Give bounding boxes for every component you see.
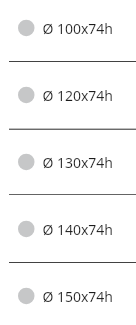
button[interactable]: Ø 130x74h <box>0 129 136 196</box>
staticText: Ø 150x74h <box>43 287 114 306</box>
button[interactable]: Ø 100x74h <box>0 0 136 62</box>
button[interactable]: Ø 140x74h <box>0 196 136 263</box>
staticText: Ø 130x74h <box>43 153 114 172</box>
staticText: Ø 100x74h <box>43 19 114 38</box>
button[interactable]: Ø 120x74h <box>0 62 136 129</box>
staticText: Ø 140x74h <box>43 220 114 239</box>
staticText: Ø 120x74h <box>43 86 114 105</box>
button[interactable]: Ø 150x74h <box>0 263 136 325</box>
